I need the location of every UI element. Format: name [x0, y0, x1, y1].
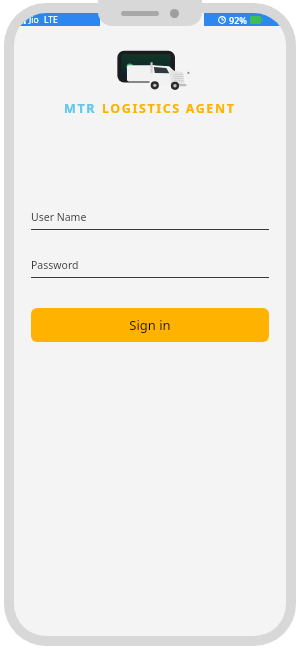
- staticText: LTE: [44, 14, 58, 26]
- button[interactable]: Sign in: [31, 308, 269, 342]
- button[interactable]: User Name: [31, 209, 269, 230]
- staticText: 92%: [229, 14, 247, 26]
- staticText: Password: [31, 258, 79, 272]
- staticText: LOGISTICS AGENT: [102, 100, 236, 117]
- staticText: Sign in: [129, 316, 171, 334]
- staticText: User Name: [31, 210, 87, 224]
- staticText: MTR: [64, 100, 97, 117]
- button[interactable]: Password: [31, 257, 269, 278]
- staticText: Jio: [29, 14, 39, 26]
